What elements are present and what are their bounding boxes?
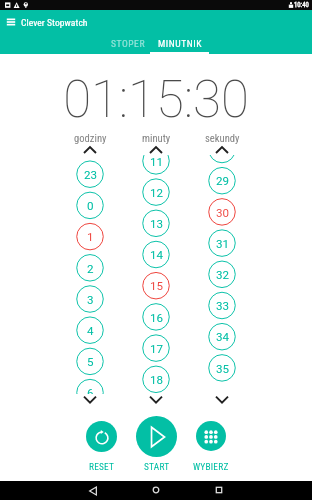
- staticText: START: [144, 461, 170, 472]
- staticText: 30: [216, 206, 230, 220]
- staticText: RESET: [89, 461, 115, 472]
- button[interactable]: 6: [77, 379, 104, 394]
- staticText: 13: [150, 217, 164, 231]
- staticText: 32: [216, 268, 230, 282]
- button[interactable]: 4: [77, 317, 104, 344]
- staticText: godziny: [74, 132, 107, 144]
- button[interactable]: 1: [77, 223, 104, 250]
- staticText: MINUTNIK: [158, 38, 202, 49]
- button[interactable]: [196, 421, 226, 451]
- staticText: 34: [216, 330, 230, 344]
- button[interactable]: STOPER: [106, 32, 150, 54]
- staticText: 6: [87, 386, 94, 394]
- button[interactable]: 16: [143, 304, 170, 331]
- button[interactable]: 18: [143, 366, 170, 393]
- button[interactable]: Menu: [0, 11, 22, 33]
- button[interactable]: 33: [209, 292, 236, 319]
- button[interactable]: minuty down: [145, 391, 167, 406]
- staticText: 10:40: [294, 1, 309, 9]
- staticText: 5: [87, 355, 94, 369]
- button[interactable]: 17: [143, 335, 170, 362]
- button[interactable]: 14: [143, 241, 170, 268]
- button[interactable]: [86, 421, 117, 452]
- staticText: 1: [87, 230, 94, 244]
- button[interactable]: 0: [77, 192, 104, 219]
- button[interactable]: 30: [209, 199, 236, 226]
- staticText: 31: [216, 237, 230, 251]
- staticText: 4: [87, 324, 94, 338]
- staticText: minuty: [142, 132, 171, 144]
- button[interactable]: godziny up: [79, 142, 101, 157]
- button[interactable]: 5: [77, 348, 104, 375]
- staticText: 2: [87, 262, 94, 276]
- button[interactable]: 35: [209, 355, 236, 382]
- button[interactable]: sekundy up: [211, 142, 233, 157]
- staticText: 01:15:30: [0, 70, 312, 130]
- button[interactable]: 29: [209, 167, 236, 194]
- staticText: WYBIERZ: [193, 461, 229, 472]
- button[interactable]: minuty up: [145, 142, 167, 157]
- staticText: 16: [150, 311, 164, 325]
- staticText: Clever Stopwatch: [21, 17, 88, 28]
- button[interactable]: MINUTNIK: [150, 32, 209, 54]
- staticText: 29: [216, 174, 230, 188]
- button[interactable]: 32: [209, 261, 236, 288]
- staticText: 3: [87, 293, 94, 307]
- button[interactable]: Home: [146, 480, 166, 500]
- staticText: STOPER: [111, 38, 146, 49]
- button[interactable]: 31: [209, 230, 236, 257]
- staticText: sekundy: [205, 132, 240, 144]
- button[interactable]: 28: [209, 155, 236, 163]
- staticText: 12: [150, 186, 164, 200]
- button[interactable]: [136, 416, 177, 457]
- button[interactable]: 34: [209, 323, 236, 350]
- staticText: 0: [87, 199, 94, 213]
- button[interactable]: Back: [83, 481, 103, 500]
- button[interactable]: 15: [143, 272, 170, 299]
- staticText: 14: [150, 248, 164, 262]
- button[interactable]: 2: [77, 255, 104, 282]
- button[interactable]: 23: [77, 161, 104, 188]
- staticText: 23: [84, 168, 98, 182]
- staticText: 18: [150, 373, 164, 387]
- button[interactable]: 12: [143, 179, 170, 206]
- staticText: 17: [150, 342, 164, 356]
- staticText: 15: [150, 279, 164, 293]
- button[interactable]: godziny down: [79, 391, 101, 406]
- staticText: 33: [216, 299, 230, 313]
- staticText: 35: [216, 362, 230, 376]
- button[interactable]: sekundy down: [211, 391, 233, 406]
- staticText: 11: [150, 155, 164, 169]
- button[interactable]: 13: [143, 210, 170, 237]
- button[interactable]: Recents: [209, 480, 229, 500]
- button[interactable]: 3: [77, 286, 104, 313]
- button[interactable]: 11: [143, 155, 170, 175]
